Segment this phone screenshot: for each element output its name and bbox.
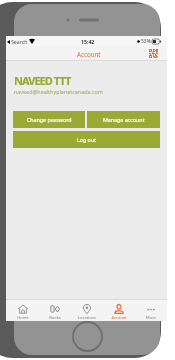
button[interactable]: Scan QR code xyxy=(148,48,159,59)
staticText: Change password xyxy=(27,116,72,123)
staticText: More xyxy=(146,315,156,320)
staticText: Search xyxy=(11,38,28,45)
staticText: 53% xyxy=(141,38,151,45)
button[interactable]: More xyxy=(135,300,167,321)
staticText: Books xyxy=(49,315,61,320)
button[interactable]: Books xyxy=(39,300,71,321)
staticText: 15:42 xyxy=(81,38,95,45)
button[interactable]: Locations xyxy=(71,300,103,321)
staticText: Home xyxy=(17,315,29,320)
staticText: Manage account xyxy=(103,116,145,123)
staticText: NAVEED TTT xyxy=(14,73,71,88)
staticText: naveed@healthyplanetcanada.com xyxy=(14,88,103,95)
staticText: Account xyxy=(77,50,101,58)
button[interactable]: Change password xyxy=(13,111,85,128)
button[interactable]: Home xyxy=(6,300,39,321)
staticText: Account xyxy=(111,315,127,320)
button[interactable]: Account xyxy=(103,300,135,321)
button[interactable]: Log out xyxy=(13,131,160,148)
staticText: Locations xyxy=(78,315,96,320)
staticText: Log out xyxy=(77,136,97,143)
button[interactable]: Manage account xyxy=(87,111,160,128)
